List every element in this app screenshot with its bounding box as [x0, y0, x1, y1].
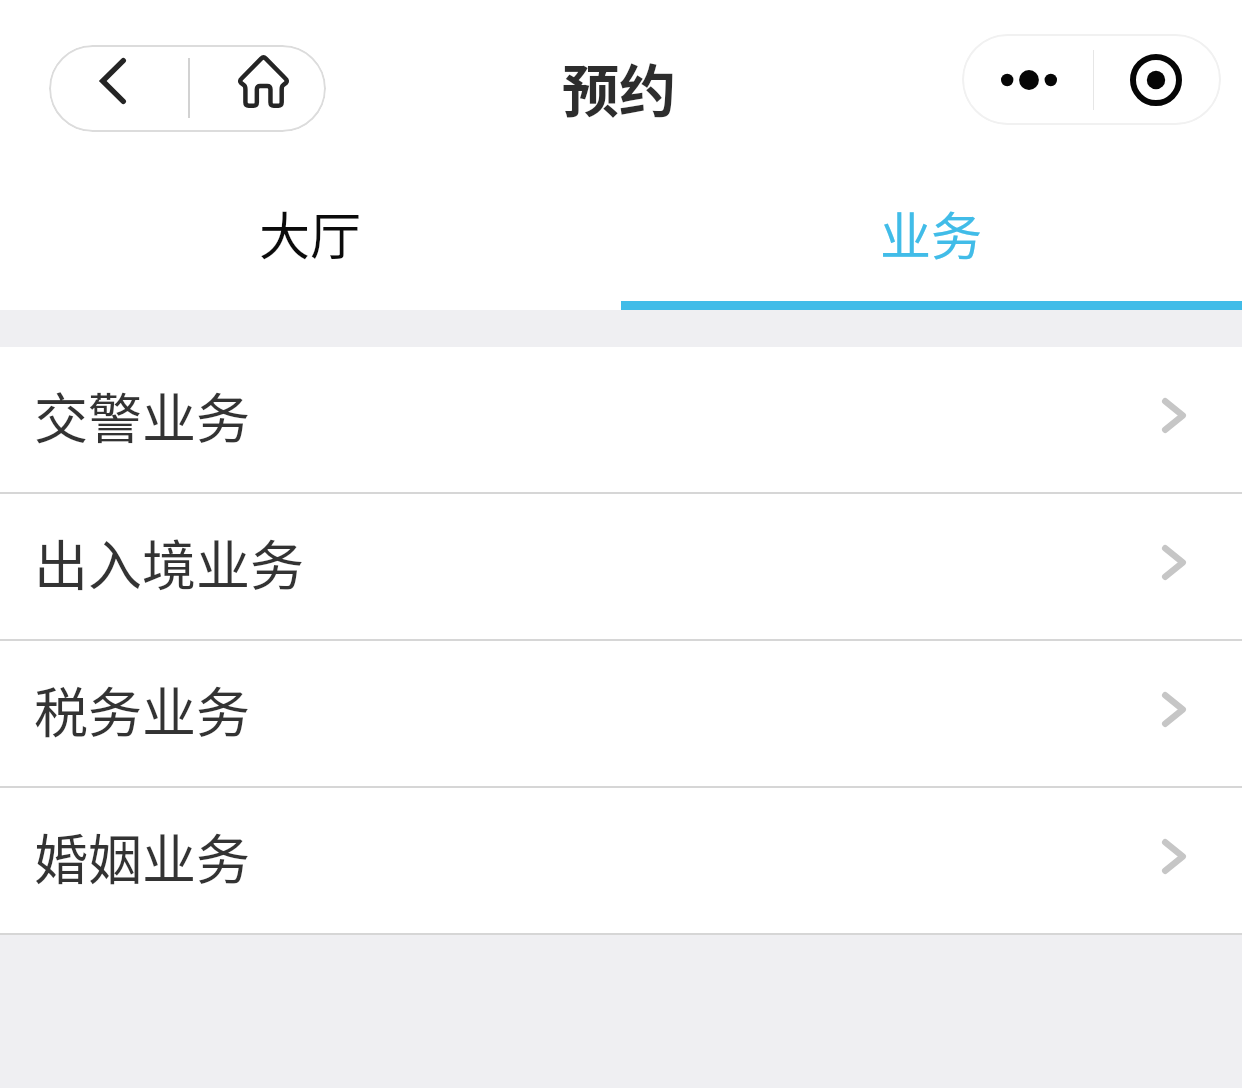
button[interactable]: 出入境业务 — [0, 494, 1242, 639]
button[interactable]: 业务 — [621, 174, 1242, 310]
staticText: 预约 — [562, 46, 676, 129]
button[interactable]: Home — [190, 45, 326, 132]
button[interactable]: 税务业务 — [0, 641, 1242, 786]
button[interactable]: 婚姻业务 — [0, 788, 1242, 933]
staticText: 业务 — [880, 196, 983, 270]
staticText: 大厅 — [259, 196, 362, 270]
button[interactable]: Close mini program — [1095, 34, 1221, 125]
staticText: 婚姻业务 — [34, 817, 250, 895]
button[interactable]: 交警业务 — [0, 347, 1242, 492]
staticText: 出入境业务 — [34, 523, 304, 601]
staticText: 税务业务 — [34, 670, 250, 748]
button[interactable]: 大厅 — [0, 174, 621, 310]
button[interactable]: Back — [49, 45, 188, 132]
button[interactable]: More options — [962, 34, 1093, 125]
staticText: 交警业务 — [34, 376, 250, 454]
